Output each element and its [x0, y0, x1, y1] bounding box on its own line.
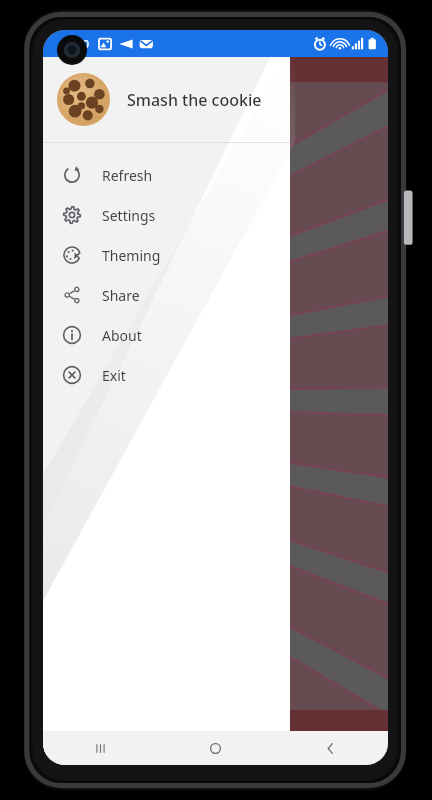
button[interactable]: Settings [43, 195, 290, 235]
staticText: Refresh [102, 166, 153, 185]
button[interactable]: Home [158, 731, 273, 765]
staticText: Theming [102, 246, 161, 265]
button[interactable]: Smash the cookie [43, 57, 290, 142]
staticText: Share [102, 286, 140, 305]
staticText: Smash the cookie [127, 89, 262, 111]
button[interactable]: Theming [43, 235, 290, 275]
staticText: 10:50 [61, 36, 90, 51]
staticText: Settings [102, 206, 156, 225]
button[interactable]: Share [43, 275, 290, 315]
button[interactable]: Back [273, 731, 388, 765]
button[interactable]: Exit [43, 355, 290, 395]
staticText: About [102, 326, 142, 345]
staticText: Exit [102, 366, 126, 385]
button[interactable]: Refresh [43, 155, 290, 195]
button[interactable]: About [43, 315, 290, 355]
button[interactable]: Recent apps [43, 731, 158, 765]
